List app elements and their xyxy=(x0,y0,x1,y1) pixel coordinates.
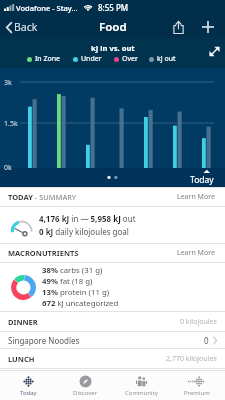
button[interactable]: Learn More xyxy=(175,246,217,260)
staticText: TODAY - SUMMARY xyxy=(8,192,77,202)
staticText: 4,176 kJ in — 5,958 kJ out xyxy=(39,213,136,224)
staticText: Learn More xyxy=(177,192,215,202)
staticText: Under xyxy=(81,54,102,64)
staticText: Today xyxy=(20,389,37,397)
button[interactable]: Back xyxy=(0,17,44,37)
button[interactable]: Community xyxy=(113,371,169,400)
staticText: 0 xyxy=(204,335,209,346)
staticText: 672 kJ uncategorized xyxy=(42,298,119,309)
staticText: Community xyxy=(125,389,158,397)
staticText: Premium xyxy=(184,389,210,397)
staticText: 0k xyxy=(4,163,12,173)
staticText: 13% protein (11 g) xyxy=(42,287,110,298)
staticText: 0 kJ daily kilojoules goal xyxy=(39,226,129,237)
staticText: 8:55 PM xyxy=(98,2,129,13)
staticText: Discover xyxy=(73,389,98,397)
staticText: Back xyxy=(14,20,38,34)
staticText: In Zone xyxy=(35,54,61,64)
staticText: kJ in vs. out xyxy=(91,43,135,53)
staticText: 3k xyxy=(4,78,12,88)
staticText: 0 kilojoules xyxy=(180,317,217,327)
button[interactable]: Premium xyxy=(169,371,225,400)
button[interactable]: Today xyxy=(0,371,57,400)
staticText: Vodafone - Stay... xyxy=(16,3,78,13)
staticText: kJ out xyxy=(157,54,176,64)
button[interactable]: Expand chart xyxy=(206,43,222,59)
staticText: Over xyxy=(122,54,138,64)
staticText: Today xyxy=(190,174,214,186)
staticText: Singapore Noodles xyxy=(8,335,80,346)
button[interactable]: Singapore Noodles xyxy=(0,332,225,348)
staticText: 2,770 kilojoules xyxy=(166,354,217,364)
staticText: 49% fat (18 g) xyxy=(42,276,93,287)
staticText: DINNER xyxy=(8,317,38,327)
button[interactable]: Add xyxy=(198,17,218,37)
button[interactable]: Discover xyxy=(57,371,113,400)
staticText: LUNCH xyxy=(8,354,35,364)
button[interactable]: Learn More xyxy=(175,190,217,204)
button[interactable]: Share xyxy=(168,17,188,37)
staticText: Learn More xyxy=(177,248,215,258)
staticText: 38% carbs (31 g) xyxy=(42,265,103,276)
staticText: MACRONUTRIENTS xyxy=(8,248,79,258)
staticText: Food xyxy=(99,19,127,35)
staticText: 1.5k xyxy=(4,119,18,129)
